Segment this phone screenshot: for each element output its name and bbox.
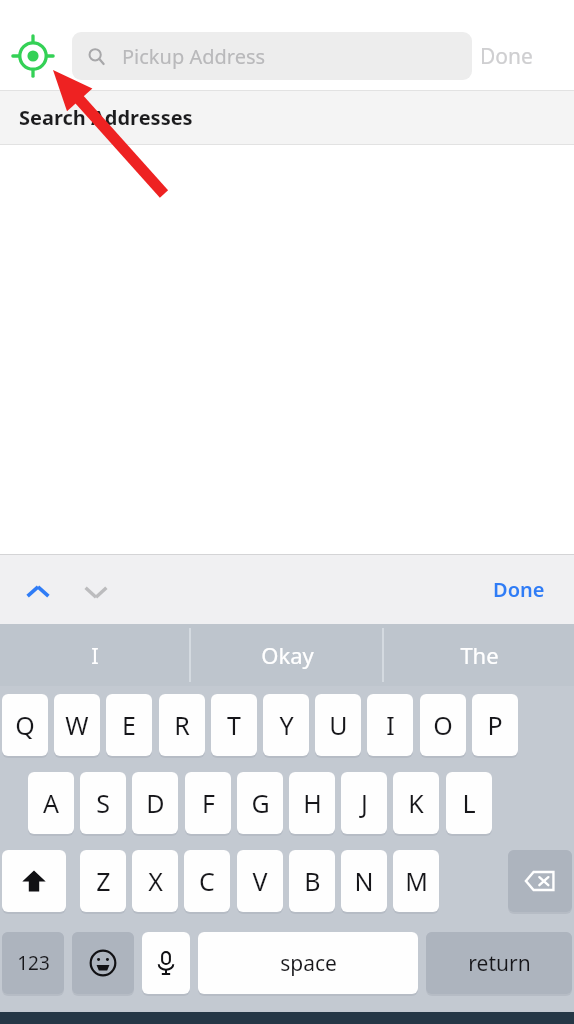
staticText: D	[146, 786, 165, 820]
button[interactable]: W	[54, 694, 100, 756]
staticText: 123	[17, 950, 50, 976]
button[interactable]: V	[237, 850, 283, 912]
button[interactable]: K	[393, 772, 439, 834]
staticText: Pickup Address	[122, 43, 266, 70]
button[interactable]: Previous field	[14, 568, 62, 616]
button[interactable]: D	[132, 772, 178, 834]
button[interactable]: Pickup Address	[72, 32, 472, 80]
staticText: F	[202, 786, 215, 820]
staticText: S	[96, 786, 110, 820]
staticText: M	[405, 864, 428, 898]
button[interactable]: I	[0, 624, 190, 686]
staticText: Done	[480, 42, 533, 71]
staticText: R	[174, 708, 190, 742]
staticText: return	[468, 949, 531, 978]
button[interactable]: Done	[478, 565, 560, 613]
button[interactable]: 123	[2, 932, 64, 994]
button[interactable]: L	[446, 772, 492, 834]
staticText: A	[43, 786, 59, 820]
button[interactable]: Z	[80, 850, 126, 912]
staticText: space	[280, 949, 337, 978]
button[interactable]: G	[237, 772, 283, 834]
staticText: The	[460, 640, 499, 670]
button[interactable]: T	[211, 694, 257, 756]
button[interactable]: C	[184, 850, 230, 912]
staticText: I	[91, 640, 99, 670]
staticText: I	[386, 708, 395, 742]
button[interactable]: X	[132, 850, 178, 912]
button[interactable]: O	[420, 694, 466, 756]
staticText: G	[251, 786, 270, 820]
staticText: Q	[15, 708, 35, 742]
staticText: X	[148, 864, 163, 898]
button[interactable]: Q	[2, 694, 48, 756]
button[interactable]: B	[289, 850, 335, 912]
button[interactable]: I	[367, 694, 413, 756]
button[interactable]: The	[384, 624, 574, 686]
button[interactable]: return	[426, 932, 572, 994]
staticText: H	[303, 786, 322, 820]
staticText: W	[65, 708, 89, 742]
button[interactable]: S	[80, 772, 126, 834]
button[interactable]: J	[341, 772, 387, 834]
staticText: Search Addresses	[19, 104, 193, 131]
button[interactable]: U	[315, 694, 361, 756]
button[interactable]: Dictation	[142, 932, 190, 994]
staticText: Done	[493, 576, 545, 603]
button[interactable]: Backspace	[508, 850, 572, 912]
button[interactable]: Done	[480, 32, 564, 80]
button[interactable]: Y	[263, 694, 309, 756]
staticText: E	[122, 708, 136, 742]
staticText: Okay	[261, 640, 314, 670]
staticText: C	[199, 864, 215, 898]
button[interactable]: H	[289, 772, 335, 834]
staticText: K	[408, 786, 424, 820]
staticText: V	[252, 864, 268, 898]
staticText: N	[354, 864, 374, 898]
staticText: P	[487, 708, 503, 742]
button[interactable]: Next field	[72, 568, 120, 616]
staticText: B	[304, 864, 321, 898]
button[interactable]: N	[341, 850, 387, 912]
button[interactable]: Use current location	[10, 33, 56, 79]
staticText: J	[361, 786, 368, 820]
button[interactable]: M	[393, 850, 439, 912]
button[interactable]: F	[185, 772, 231, 834]
button[interactable]: space	[198, 932, 418, 994]
button[interactable]: R	[159, 694, 205, 756]
button[interactable]: Shift	[2, 850, 66, 912]
staticText: T	[227, 708, 241, 742]
staticText: L	[462, 786, 476, 820]
button[interactable]: P	[472, 694, 518, 756]
button[interactable]: Okay	[191, 624, 383, 686]
staticText: O	[433, 708, 453, 742]
staticText: Y	[279, 708, 294, 742]
button[interactable]: E	[106, 694, 152, 756]
staticText: U	[329, 708, 348, 742]
button[interactable]: Search Addresses	[0, 91, 574, 144]
button[interactable]: A	[28, 772, 74, 834]
staticText: Z	[96, 864, 111, 898]
button[interactable]: Emoji	[72, 932, 134, 994]
